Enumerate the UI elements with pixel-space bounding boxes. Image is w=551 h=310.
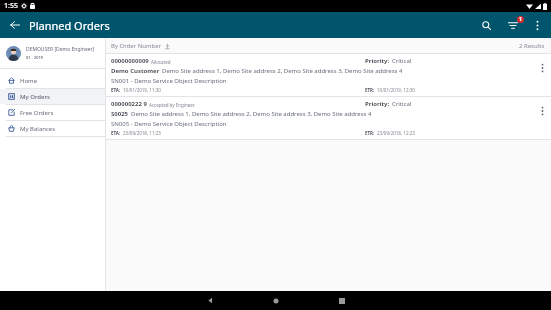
staticText: 1:55 (4, 1, 18, 11)
staticText: 000000222 9 (111, 100, 147, 108)
staticText: My Balances (20, 125, 56, 133)
staticText: Critical (392, 57, 412, 65)
button[interactable]: Search (477, 16, 495, 34)
staticText: Accepted by Engineer (149, 102, 195, 108)
staticText: 23/09/2018, 11:23 (123, 130, 161, 136)
staticText: 01 - 2019 (26, 55, 44, 60)
staticText: Demo Site address 1, Demo Site address 2… (131, 110, 372, 118)
staticText: Critical (392, 100, 412, 108)
staticText: Home (20, 77, 38, 85)
button[interactable]: My Balances (0, 121, 105, 136)
staticText: By Order Number (111, 42, 162, 50)
staticText: 2 Results (519, 42, 545, 50)
button[interactable]: My Orders (0, 89, 105, 104)
staticText: DEMOUSER [Demo Engineer] (26, 46, 95, 53)
staticText: Priority: (365, 57, 390, 65)
button[interactable]: Order options (535, 57, 549, 79)
staticText: 00000000009 (111, 57, 149, 65)
staticText: Planned Orders (29, 18, 110, 33)
staticText: Priority: (365, 100, 390, 108)
staticText: ETR: (365, 130, 375, 136)
button[interactable]: 000000222 9 (106, 97, 551, 139)
staticText: S0025 (111, 110, 129, 118)
staticText: ETA: (111, 87, 121, 93)
button[interactable]: Filter (504, 16, 522, 34)
staticText: Demo Site address 1, Demo Site address 2… (162, 67, 403, 75)
button[interactable]: Back (7, 17, 23, 33)
staticText: 1 (519, 16, 522, 23)
button[interactable]: Back (199, 291, 221, 310)
button[interactable]: Home (0, 73, 105, 88)
staticText: ETR: (365, 87, 375, 93)
staticText: Demo Customer (111, 67, 160, 75)
button[interactable]: 00000000009 (106, 54, 551, 96)
button[interactable]: Order options (535, 100, 549, 122)
button[interactable]: Free Orders (0, 105, 105, 120)
staticText: SN001 - Demo Service Object Description (111, 77, 227, 85)
staticText: 10/01/2019, 12:30 (377, 87, 415, 93)
staticText: SN005 - Demo Service Object Description (111, 120, 227, 128)
button[interactable]: By Order Number (111, 42, 170, 50)
button[interactable]: Recent apps (331, 291, 353, 310)
button[interactable]: More options (529, 17, 545, 33)
staticText: My Orders (20, 93, 50, 101)
staticText: 10/01/2019, 11:30 (123, 87, 161, 93)
staticText: Allocated (151, 59, 171, 65)
staticText: 23/09/2018, 12:23 (377, 130, 415, 136)
button[interactable]: Home (265, 291, 287, 310)
button[interactable]: DEMOUSER [Demo Engineer] (0, 38, 105, 68)
staticText: ETA: (111, 130, 121, 136)
staticText: Free Orders (20, 109, 54, 117)
